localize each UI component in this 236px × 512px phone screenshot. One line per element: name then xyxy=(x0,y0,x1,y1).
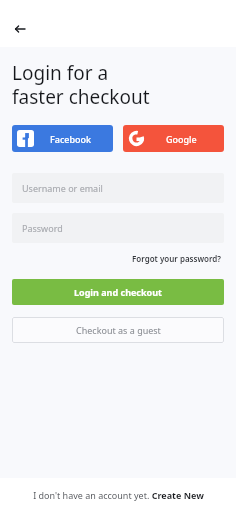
button[interactable]: Back xyxy=(6,15,34,43)
staticText: Login and checkout xyxy=(74,286,162,298)
button[interactable]: Forgot your password? xyxy=(130,251,224,266)
staticText: I don't have an account yet. Create New xyxy=(33,489,204,501)
button[interactable]: Username or email xyxy=(12,173,224,203)
staticText: Facebook xyxy=(50,133,92,145)
staticText: Checkout as a guest xyxy=(76,324,161,336)
staticText: Username or email xyxy=(22,182,103,194)
button[interactable]: Login and checkout xyxy=(12,279,224,305)
staticText: Forgot your password? xyxy=(132,253,222,264)
button[interactable]: Google xyxy=(123,125,224,152)
button[interactable]: Facebook xyxy=(12,125,113,152)
button[interactable]: Checkout as a guest xyxy=(12,317,224,343)
staticText: Google xyxy=(166,133,197,145)
button[interactable]: I don't have an account yet. Create New xyxy=(0,478,236,512)
button[interactable]: Password xyxy=(12,213,224,243)
staticText: Login for a faster checkout xyxy=(12,60,150,109)
staticText: Password xyxy=(22,222,63,234)
